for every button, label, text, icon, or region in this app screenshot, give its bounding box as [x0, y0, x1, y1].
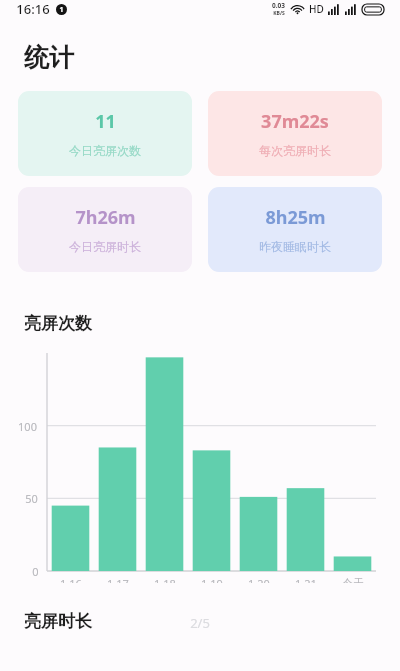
staticText: 50 [25, 491, 38, 506]
staticText: 亮屏时长 [24, 611, 92, 632]
staticText: 7h26m [75, 205, 136, 230]
staticText: 昨夜睡眠时长 [259, 239, 331, 254]
staticText: 8h25m [265, 205, 326, 230]
staticText: 16:16 [16, 0, 50, 18]
staticText: 1.20 [248, 576, 270, 583]
button[interactable]: 8h25m [208, 187, 382, 272]
staticText: 0.03 [272, 1, 285, 10]
staticText: 今日亮屏时长 [69, 239, 141, 254]
staticText: 统计 [24, 42, 74, 73]
button[interactable]: 7h26m [18, 187, 192, 272]
staticText: 37m22s [261, 109, 329, 134]
staticText: 今天 [342, 576, 364, 583]
staticText: 11 [95, 109, 116, 134]
staticText: 每次亮屏时长 [259, 143, 331, 158]
staticText: 1.19 [201, 576, 223, 583]
staticText: 1.18 [154, 576, 176, 583]
staticText: 亮屏次数 [24, 313, 92, 334]
staticText: 2/5 [190, 614, 210, 632]
staticText: 0 [32, 564, 39, 579]
staticText: 1 [59, 5, 64, 15]
staticText: HD [309, 2, 324, 16]
staticText: 1.16 [60, 576, 82, 583]
staticText: 100 [18, 419, 37, 434]
staticText: KB/S [273, 10, 285, 17]
button[interactable]: 37m22s [208, 91, 382, 176]
staticText: 1.21 [295, 576, 317, 583]
staticText: 1.17 [107, 576, 129, 583]
staticText: 今日亮屏次数 [69, 143, 141, 158]
button[interactable]: 11 [18, 91, 192, 176]
